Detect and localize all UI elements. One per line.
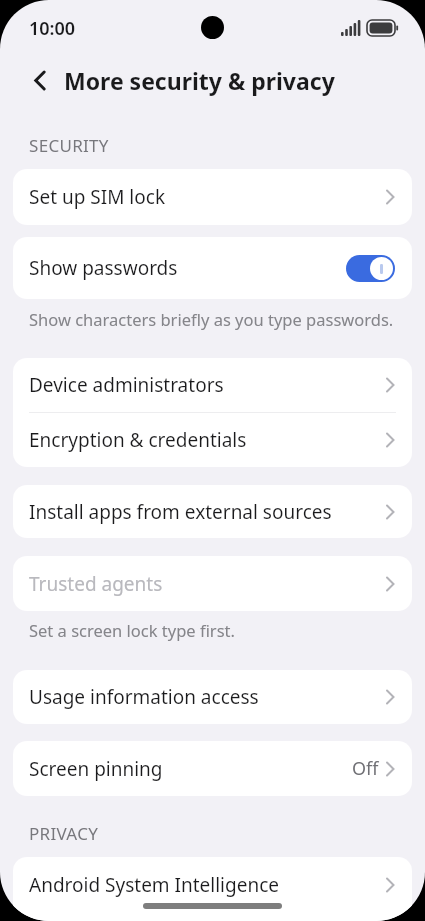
button[interactable] [34, 70, 46, 91]
button[interactable]: Android System Intelligence [13, 857, 412, 913]
button[interactable]: Show passwords [13, 237, 412, 299]
staticText: SECURITY [29, 134, 109, 157]
button[interactable]: Install apps from external sources [13, 485, 412, 538]
staticText: Set up SIM lock [29, 184, 166, 210]
staticText: Usage information access [29, 684, 259, 710]
staticText: Device administrators [29, 372, 224, 398]
button[interactable]: Set up SIM lock [13, 169, 412, 225]
staticText: Trusted agents [29, 571, 163, 597]
button[interactable]: Usage information access [13, 670, 412, 724]
staticText: Show passwords [29, 255, 178, 281]
staticText: Install apps from external sources [29, 499, 332, 525]
button[interactable]: Screen pinning [13, 741, 412, 796]
button[interactable] [346, 255, 395, 282]
staticText: Off [352, 756, 379, 781]
button[interactable]: Trusted agents [13, 556, 412, 611]
staticText: 10:00 [29, 16, 76, 41]
staticText: Set a screen lock type first. [29, 619, 235, 641]
staticText: PRIVACY [29, 822, 99, 845]
staticText: More security & privacy [64, 65, 335, 96]
staticText: Android System Intelligence [29, 872, 280, 898]
staticText: Screen pinning [29, 756, 163, 782]
staticText: Show characters briefly as you type pass… [29, 308, 394, 330]
button[interactable]: Device administrators [13, 358, 412, 412]
button[interactable]: Encryption & credentials [13, 413, 412, 467]
staticText: Encryption & credentials [29, 427, 247, 453]
